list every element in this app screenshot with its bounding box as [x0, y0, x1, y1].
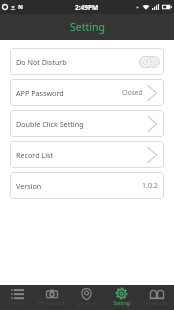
staticText: Introduction: [142, 300, 172, 307]
button[interactable]: Setting: [104, 285, 139, 310]
staticText: 1.0.2: [142, 181, 158, 191]
staticText: Photograph: [38, 300, 66, 307]
staticText: Double Click Setting: [16, 119, 84, 129]
button[interactable]: Photograph: [34, 285, 69, 310]
staticText: N: [18, 3, 23, 11]
button[interactable]: Version: [10, 172, 164, 199]
staticText: Setting: [113, 300, 130, 307]
button[interactable]: Device: [0, 285, 34, 310]
button[interactable]: Location: [69, 285, 104, 310]
staticText: 2:49PM: [75, 3, 99, 12]
button[interactable]: Record List: [10, 141, 164, 168]
button[interactable]: Introduction: [139, 285, 174, 310]
staticText: APP Password: [16, 88, 64, 98]
staticText: Location: [76, 301, 97, 308]
button[interactable]: Do Not Disturb: [10, 48, 164, 75]
staticText: Closed: [122, 88, 143, 97]
staticText: Device: [9, 300, 25, 307]
staticText: Do Not Disturb: [16, 57, 67, 67]
button[interactable]: APP Password: [10, 79, 164, 106]
staticText: Record List: [16, 150, 54, 160]
staticText: Version: [16, 181, 42, 191]
button[interactable]: Do Not Disturb toggle: [139, 56, 160, 68]
staticText: Setting: [70, 20, 105, 34]
button[interactable]: Double Click Setting: [10, 110, 164, 137]
